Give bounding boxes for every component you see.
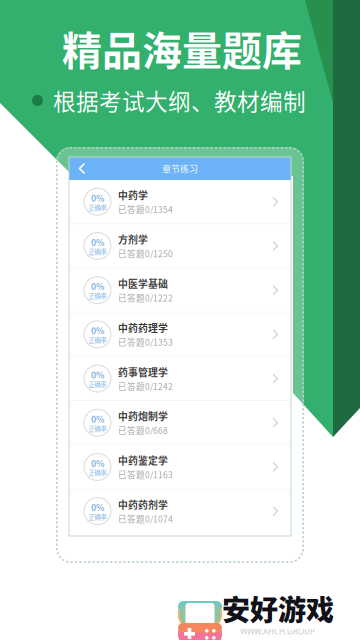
staticText: WWW.AHCH.GROUP: [240, 626, 315, 637]
staticText: 0%: [91, 191, 104, 204]
staticText: 中药学: [118, 188, 148, 202]
staticText: 已答题0/1163: [118, 468, 173, 481]
button[interactable]: 0%: [70, 401, 290, 444]
button[interactable]: 0%: [70, 180, 290, 223]
staticText: 正确率: [88, 468, 106, 477]
button[interactable]: 0%: [70, 268, 290, 312]
staticText: 已答题0/1222: [118, 292, 173, 304]
staticText: 正确率: [88, 247, 106, 256]
staticText: 正确率: [88, 291, 106, 300]
button[interactable]: Back: [69, 157, 95, 180]
button[interactable]: 0%: [70, 313, 290, 356]
staticText: 已答题0/1250: [118, 247, 173, 260]
button[interactable]: 0%: [70, 489, 290, 533]
staticText: 正确率: [88, 335, 106, 345]
staticText: 中药药理学: [118, 320, 168, 335]
staticText: 已答题0/1242: [118, 380, 173, 392]
staticText: 0%: [91, 324, 104, 337]
staticText: 精品海量题库: [62, 19, 302, 77]
staticText: 0%: [91, 280, 104, 293]
staticText: 0%: [91, 501, 104, 514]
staticText: 0%: [91, 457, 104, 469]
staticText: 0%: [91, 236, 104, 248]
staticText: 已答题0/1353: [118, 336, 173, 348]
staticText: 方剂学: [118, 232, 148, 246]
staticText: 0%: [91, 412, 104, 425]
button[interactable]: 0%: [70, 445, 290, 489]
staticText: 章节练习: [162, 162, 198, 175]
button[interactable]: 0%: [70, 357, 290, 400]
staticText: 正确率: [88, 424, 106, 433]
staticText: 已答题0/668: [118, 424, 168, 437]
staticText: 药事管理学: [118, 365, 168, 379]
button[interactable]: 0%: [70, 224, 290, 268]
staticText: 已答题0/1354: [118, 203, 173, 216]
staticText: 根据考试大纲、教材编制: [53, 84, 306, 117]
staticText: 中药鉴定学: [118, 453, 168, 467]
staticText: 中药药剂学: [118, 497, 168, 512]
staticText: 0%: [91, 368, 104, 381]
staticText: 正确率: [88, 379, 106, 389]
staticText: 已答题0/1074: [118, 513, 173, 525]
staticText: 中药炮制学: [118, 409, 168, 423]
staticText: 安好游戏: [222, 588, 334, 628]
staticText: 正确率: [88, 512, 106, 521]
staticText: 正确率: [88, 203, 106, 212]
staticText: 中医学基础: [118, 276, 168, 291]
